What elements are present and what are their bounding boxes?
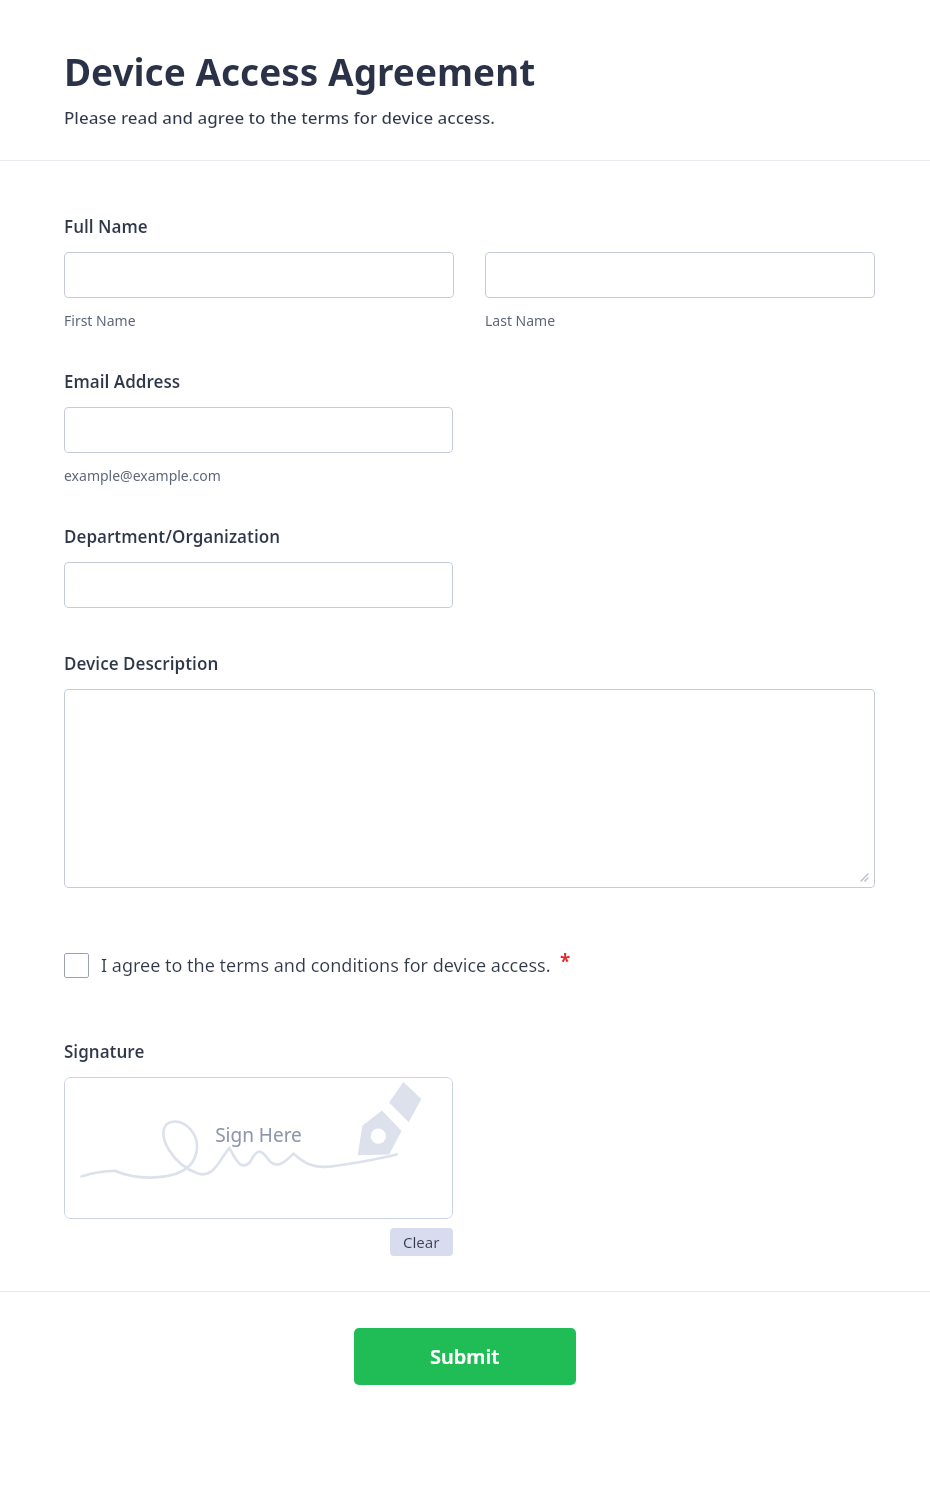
staticText: Department/Organization bbox=[64, 525, 281, 548]
staticText: example@example.com bbox=[64, 466, 221, 485]
button[interactable] bbox=[64, 562, 453, 608]
button[interactable] bbox=[64, 252, 454, 298]
button[interactable] bbox=[64, 689, 875, 888]
staticText: Sign Here bbox=[215, 1122, 302, 1148]
staticText: Device Access Agreement bbox=[64, 46, 536, 96]
staticText: Signature bbox=[64, 1040, 145, 1063]
staticText: Clear bbox=[403, 1232, 440, 1252]
staticText: Submit bbox=[430, 1343, 500, 1370]
staticText: Device Description bbox=[64, 652, 219, 675]
staticText: First Name bbox=[64, 311, 136, 330]
button[interactable]: I agree to the terms and conditions for … bbox=[64, 952, 571, 978]
staticText: Please read and agree to the terms for d… bbox=[64, 106, 495, 129]
staticText: I agree to the terms and conditions for … bbox=[101, 953, 551, 978]
staticText: Full Name bbox=[64, 215, 148, 238]
staticText: Email Address bbox=[64, 370, 181, 393]
button[interactable]: Clear bbox=[390, 1228, 453, 1256]
button[interactable] bbox=[485, 252, 875, 298]
button[interactable]: Signature pad bbox=[64, 1077, 453, 1219]
button[interactable]: Submit bbox=[354, 1328, 576, 1385]
staticText: Last Name bbox=[485, 311, 556, 330]
button[interactable] bbox=[64, 407, 453, 453]
staticText: * bbox=[560, 948, 571, 974]
